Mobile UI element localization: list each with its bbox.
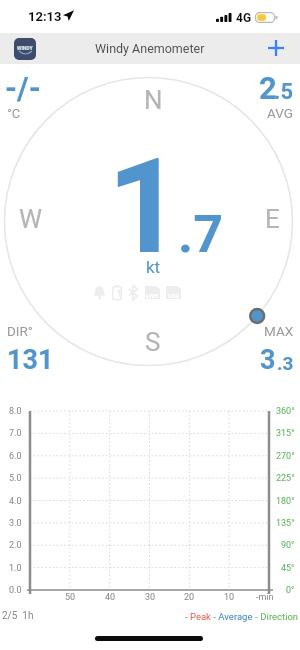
staticText: 270° — [276, 451, 295, 462]
staticText: 40 — [105, 592, 116, 603]
staticText: kt — [146, 257, 161, 277]
staticText: E — [265, 204, 280, 234]
staticText: 2/5 1h — [2, 610, 34, 622]
staticText: 1 — [107, 130, 183, 285]
staticText: -min — [256, 592, 274, 603]
staticText: DIR° — [7, 323, 33, 339]
button[interactable]: Add measurement — [262, 35, 290, 63]
staticText: MAX — [264, 323, 294, 339]
staticText: 1.0 — [9, 563, 22, 574]
staticText: 360° — [276, 406, 295, 417]
staticText: 5.0 — [9, 473, 22, 484]
staticText: -/- — [5, 70, 41, 106]
staticText: 180° — [276, 496, 295, 507]
staticText: °C — [7, 106, 21, 121]
staticText: 8.0 — [9, 406, 22, 417]
staticText: 7.0 — [9, 428, 22, 439]
staticText: 135° — [276, 518, 295, 529]
staticText: - Average — [211, 611, 253, 622]
staticText: - Direction — [253, 611, 299, 622]
staticText: LIVE — [146, 292, 159, 299]
staticText: 0.0 — [9, 585, 22, 596]
staticText: 3 — [260, 344, 276, 376]
staticText: W — [19, 204, 43, 234]
staticText: AVG — [267, 105, 293, 121]
staticText: LOG — [168, 292, 180, 299]
staticText: WINDY — [17, 45, 33, 51]
staticText: 2.0 — [9, 540, 22, 551]
staticText: 90° — [281, 540, 295, 551]
staticText: 4G — [236, 11, 252, 25]
staticText: 20 — [184, 592, 195, 603]
staticText: .3 — [277, 352, 294, 374]
staticText: 4.0 — [9, 496, 22, 507]
staticText: S — [145, 327, 161, 357]
staticText: 10 — [224, 592, 235, 603]
staticText: .7 — [178, 204, 223, 265]
staticText: 45° — [281, 563, 295, 574]
staticText: 12:13 — [28, 9, 62, 24]
button[interactable]: Windy app icon — [14, 38, 36, 60]
staticText: 30 — [145, 592, 156, 603]
staticText: 50 — [65, 592, 76, 603]
staticText: .5 — [274, 79, 294, 105]
staticText: 2 — [259, 70, 277, 106]
staticText: 315° — [276, 428, 295, 439]
staticText: 131 — [7, 344, 54, 376]
staticText: 6.0 — [9, 451, 22, 462]
staticText: 225° — [276, 473, 295, 484]
staticText: 0° — [286, 585, 295, 596]
staticText: - Peak — [185, 611, 211, 622]
staticText: Windy Anemometer — [95, 41, 205, 56]
staticText: N — [144, 85, 163, 115]
staticText: 3.0 — [9, 518, 22, 529]
